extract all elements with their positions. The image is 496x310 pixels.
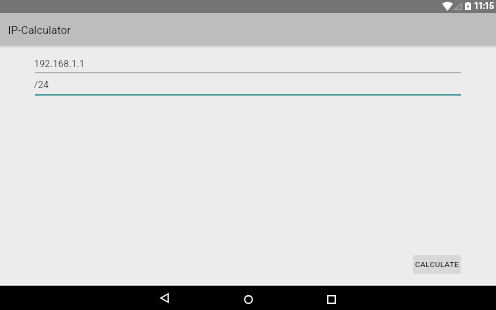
staticText: 192.168.1.1 [34, 58, 85, 69]
button[interactable]: CALCULATE [413, 255, 461, 274]
staticText: 11:15 [474, 1, 494, 11]
staticText: /24 [34, 79, 49, 90]
staticText: CALCULATE [415, 260, 459, 269]
button[interactable]: Recent apps [316, 289, 347, 309]
button[interactable]: Home [233, 289, 264, 309]
button[interactable]: Back [149, 288, 180, 308]
staticText: IP-Calculator [8, 24, 71, 37]
